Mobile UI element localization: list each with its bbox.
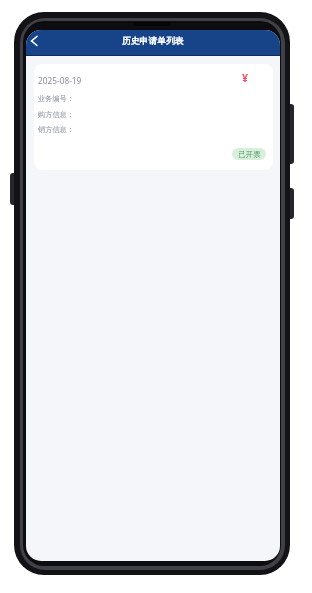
button[interactable] <box>26 30 51 55</box>
staticText: 已开票 <box>238 150 261 159</box>
staticText: 销方信息： <box>38 125 74 134</box>
staticText: 历史申请单列表 <box>122 36 184 47</box>
button[interactable]: 2025-08-19 <box>34 64 273 170</box>
button[interactable]: 已开票 <box>232 148 266 160</box>
staticText: 购方信息： <box>38 110 74 119</box>
staticText: 2025-08-19 <box>38 75 82 86</box>
staticText: ¥ <box>242 71 249 85</box>
staticText: 业务编号： <box>38 94 74 103</box>
